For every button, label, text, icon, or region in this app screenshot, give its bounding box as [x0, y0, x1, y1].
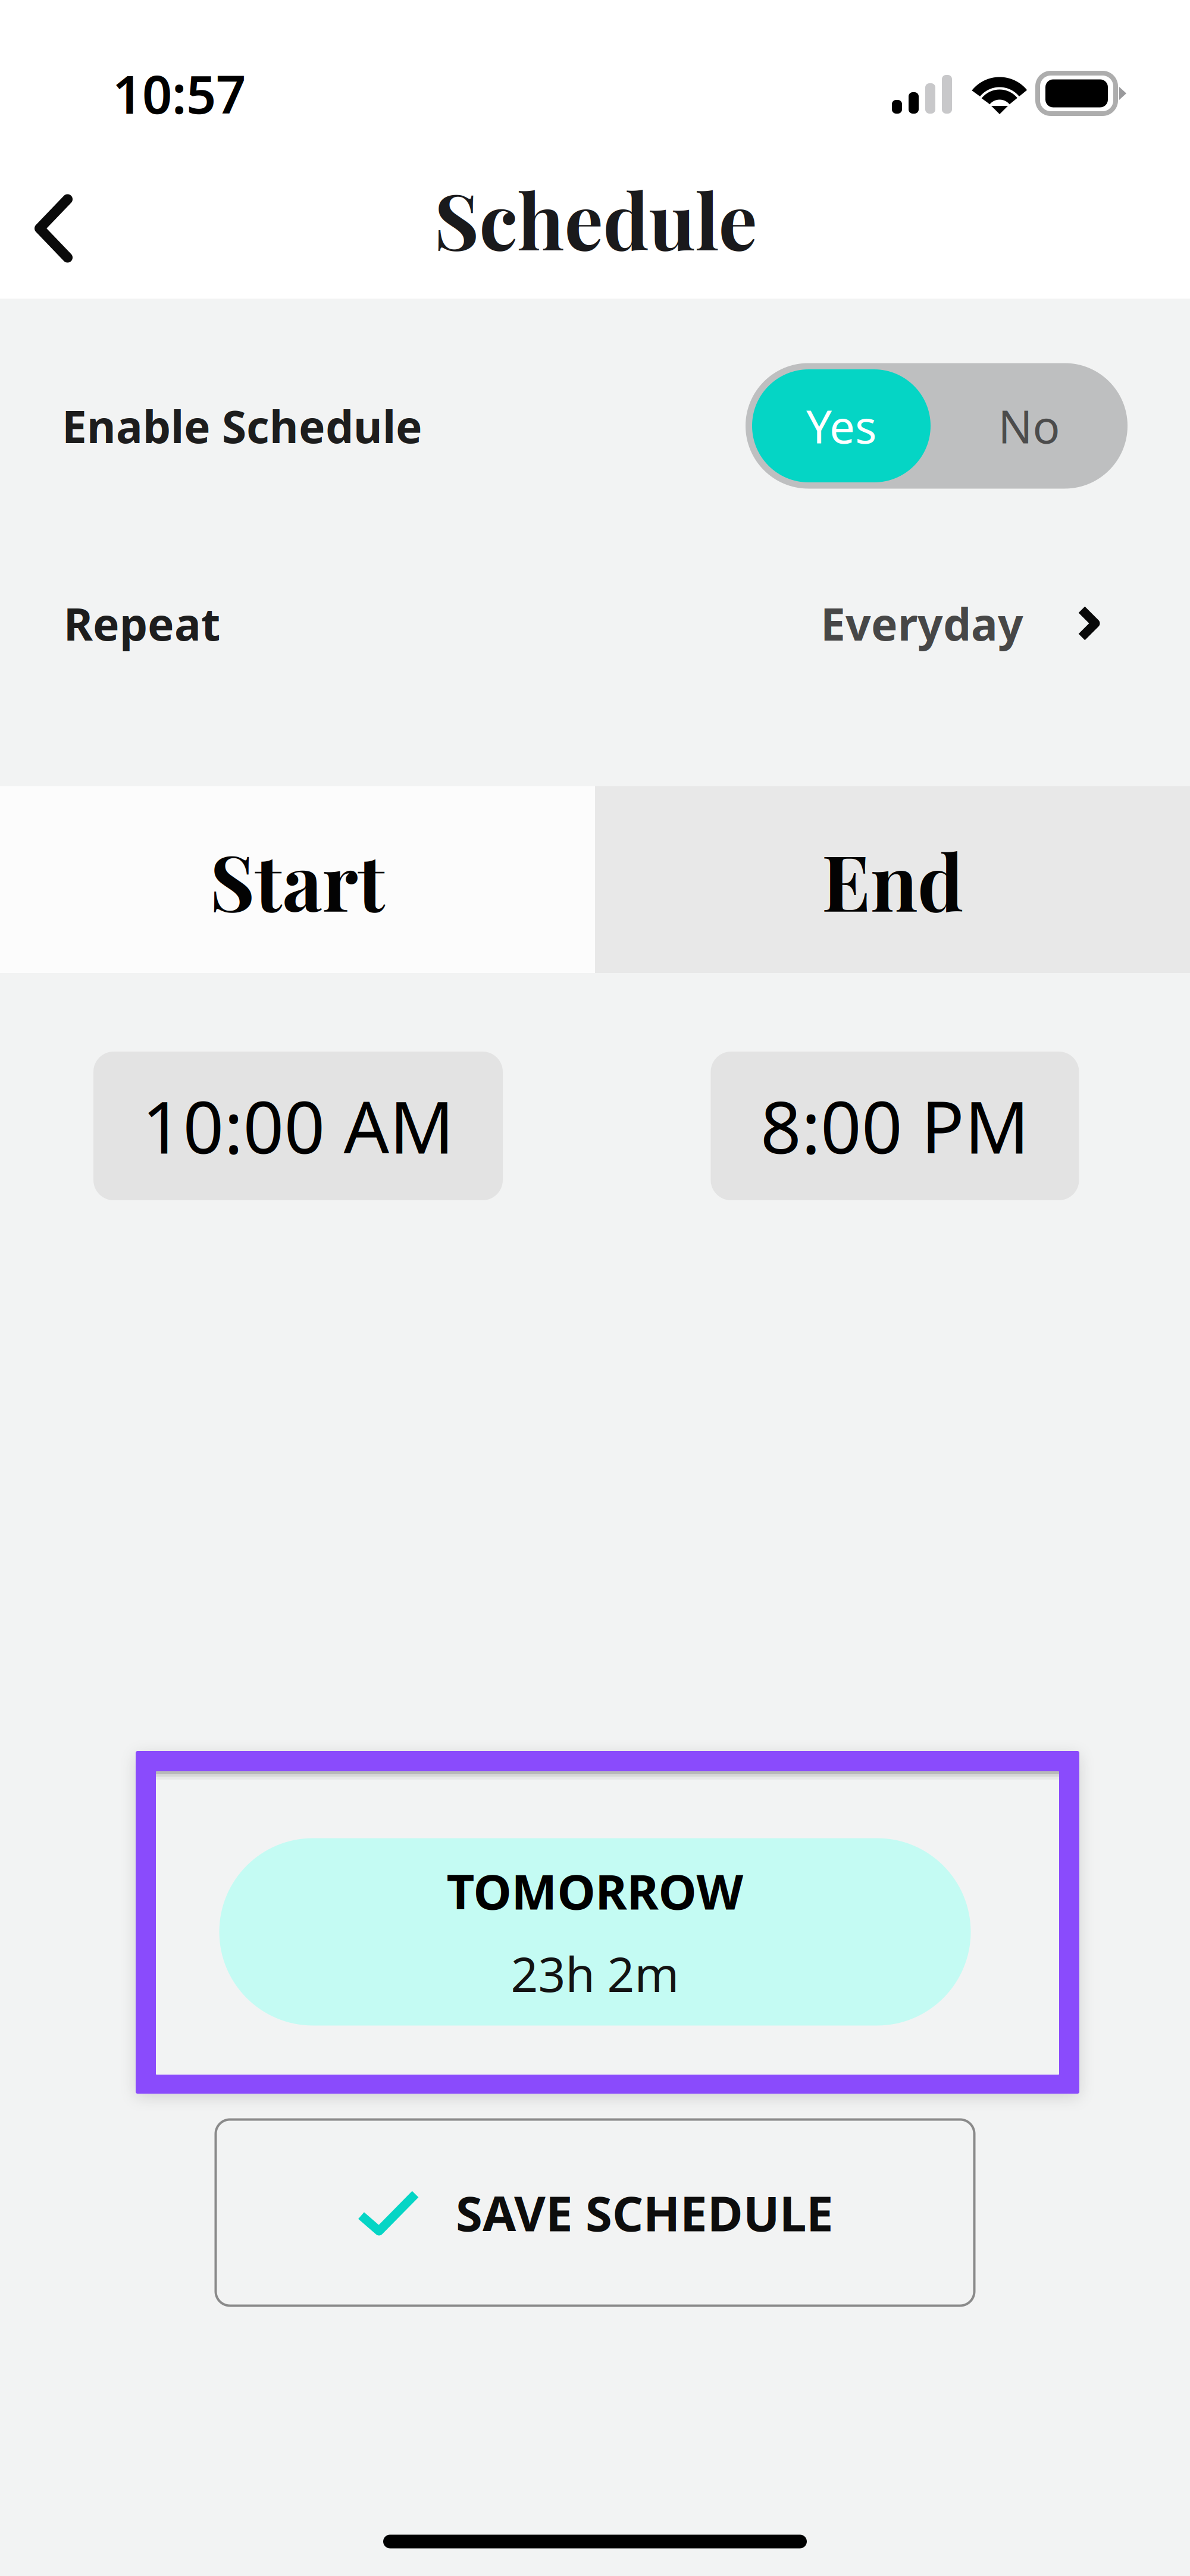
- button[interactable]: TOMORROW: [136, 1751, 1079, 2094]
- button[interactable]: End: [595, 786, 1190, 973]
- button[interactable]: SAVE SCHEDULE: [216, 2120, 974, 2306]
- staticText: SAVE SCHEDULE: [456, 2180, 834, 2245]
- button[interactable]: 8:00 PM: [711, 1052, 1079, 1200]
- staticText: Everyday: [821, 594, 1023, 653]
- button[interactable]: Yes: [746, 363, 1128, 489]
- button[interactable]: Start: [0, 786, 595, 973]
- staticText: No: [998, 396, 1060, 456]
- staticText: End: [822, 828, 963, 931]
- staticText: Enable Schedule: [62, 396, 422, 455]
- staticText: 10:57: [112, 59, 246, 128]
- staticText: 23h 2m: [511, 1942, 679, 2005]
- button[interactable]: 10:00 AM: [93, 1052, 503, 1200]
- staticText: Yes: [806, 396, 876, 456]
- staticText: 8:00 PM: [760, 1079, 1029, 1173]
- staticText: 10:00 AM: [142, 1079, 454, 1173]
- staticText: Schedule: [434, 167, 757, 270]
- button[interactable]: Back: [0, 169, 113, 288]
- staticText: Repeat: [64, 594, 220, 653]
- staticText: Start: [210, 828, 385, 931]
- button[interactable]: Repeat: [0, 534, 1190, 713]
- staticText: TOMORROW: [447, 1859, 743, 1923]
